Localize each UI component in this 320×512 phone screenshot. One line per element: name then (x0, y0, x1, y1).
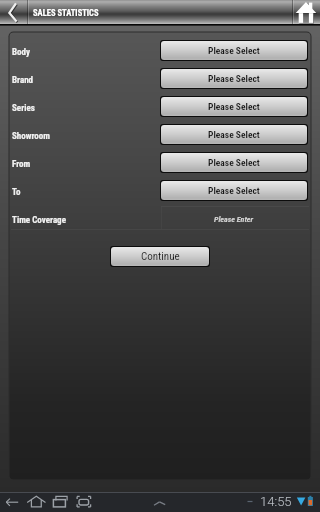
button[interactable]: Please Select (160, 152, 308, 173)
staticText: To (12, 187, 21, 198)
button[interactable]: Please Select (160, 68, 308, 89)
button[interactable]: Please Select (160, 180, 308, 201)
button[interactable]: Please Enter (160, 211, 307, 227)
button[interactable]: Home (25, 492, 48, 512)
staticText: Please Select (208, 45, 260, 56)
staticText: Please Select (208, 185, 260, 196)
button[interactable]: Show navigation (148, 492, 172, 512)
button[interactable]: Back (0, 492, 24, 512)
button[interactable]: Screenshot (74, 492, 94, 512)
staticText: Series (12, 103, 35, 114)
staticText: Please Select (208, 129, 260, 140)
staticText: Continue (141, 250, 180, 263)
button[interactable]: Please Select (160, 96, 308, 117)
staticText: Showroom (12, 131, 50, 142)
button[interactable]: Continue (110, 246, 210, 267)
staticText: Please Enter (214, 215, 254, 224)
staticText: SALES STATISTICS (33, 8, 99, 18)
staticText: Body (12, 47, 30, 58)
button[interactable]: Recent apps (50, 492, 72, 512)
staticText: Please Select (208, 73, 260, 84)
button[interactable]: Back (0, 0, 27, 24)
staticText: Time Coverage (12, 215, 66, 226)
button[interactable]: Please Select (160, 124, 308, 145)
staticText: Please Select (208, 157, 260, 168)
staticText: Please Select (208, 101, 260, 112)
button[interactable]: Home (293, 0, 320, 24)
button[interactable]: Please Select (160, 40, 308, 61)
staticText: 14:55 (260, 494, 292, 509)
staticText: Brand (12, 75, 34, 86)
staticText: From (12, 159, 31, 170)
